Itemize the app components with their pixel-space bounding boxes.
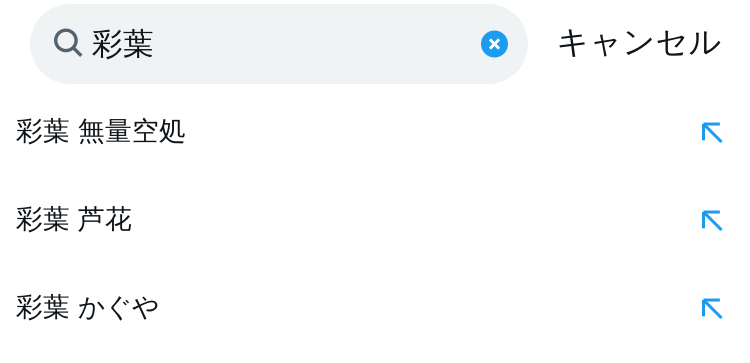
button[interactable]: 彩葉 芦花	[0, 175, 750, 263]
staticText: 彩葉 無量空処	[16, 115, 186, 147]
staticText: 彩葉	[92, 25, 154, 63]
button[interactable]: 彩葉 無量空処	[0, 87, 750, 175]
staticText: 彩葉 芦花	[16, 203, 132, 235]
staticText: キャンセル	[556, 22, 721, 62]
button[interactable]: Clear text	[481, 30, 508, 57]
button[interactable]: キャンセル	[528, 4, 750, 84]
button[interactable]: 彩葉 かぐや	[0, 263, 750, 351]
staticText: 彩葉 かぐや	[16, 291, 159, 323]
